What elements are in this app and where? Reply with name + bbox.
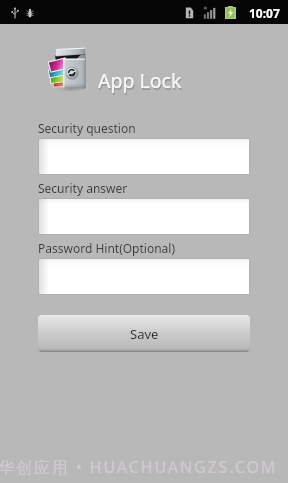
staticText: 华创应用 • HUACHUANGZS.COM: [0, 456, 278, 478]
button[interactable]: [38, 138, 250, 175]
button[interactable]: Save: [38, 315, 250, 352]
staticText: Password Hint(Optional): [38, 240, 176, 256]
button[interactable]: [38, 198, 250, 235]
staticText: Security question: [38, 120, 136, 136]
staticText: App Lock: [98, 67, 182, 94]
button[interactable]: [38, 258, 250, 295]
staticText: 10:07: [249, 5, 280, 21]
staticText: Security answer: [38, 180, 128, 196]
staticText: App Lock: [99, 69, 183, 96]
staticText: Save: [130, 325, 159, 343]
